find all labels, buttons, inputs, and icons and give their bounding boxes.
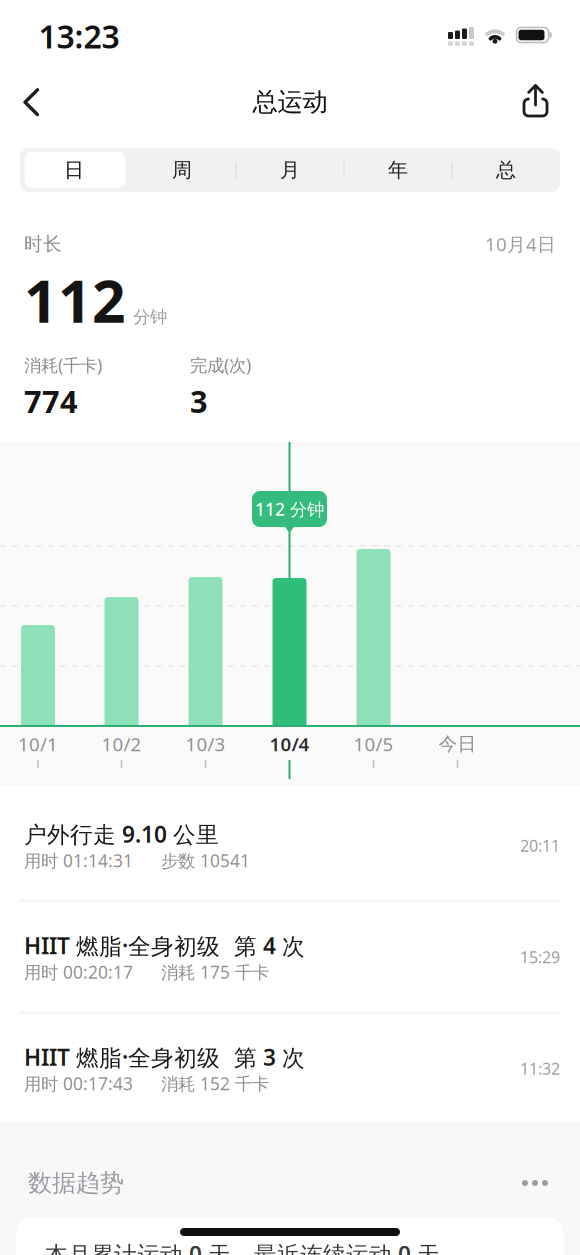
staticText: 11:32	[520, 1058, 560, 1079]
staticText: 完成(次)	[190, 353, 251, 376]
button[interactable]: 日	[20, 148, 128, 192]
staticText: 消耗 152 千卡	[161, 1072, 269, 1095]
staticText: 13:23	[38, 15, 119, 57]
staticText: 用时 00:17:43	[24, 1072, 133, 1095]
staticText: 10/2	[101, 732, 141, 756]
staticText: 用时 01:14:31	[24, 849, 133, 872]
button[interactable]: 总	[452, 148, 560, 192]
staticText: 消耗 175 千卡	[161, 961, 269, 984]
staticText: 10/3	[185, 732, 225, 756]
staticText: 消耗(千卡)	[24, 353, 102, 376]
button[interactable]: HIIT 燃脂·全身初级 第 4 次	[0, 901, 580, 1012]
button[interactable]: 户外行走 9.10 公里	[0, 790, 580, 901]
staticText: 15:29	[520, 946, 560, 968]
staticText: 用时 00:20:17	[24, 961, 133, 984]
staticText: 112 分钟	[255, 497, 324, 520]
staticText: 数据趋势	[28, 1168, 124, 1198]
staticText: 月	[280, 158, 300, 182]
button[interactable]: 本月累计运动 0 天，最近连续运动 0 天	[16, 1217, 564, 1255]
button[interactable]: 周	[128, 148, 236, 192]
staticText: HIIT 燃脂·全身初级 第 3 次	[24, 1042, 305, 1072]
staticText: 总运动	[252, 86, 327, 117]
staticText: 10/5	[353, 732, 393, 756]
button[interactable]: 年	[344, 148, 452, 192]
staticText: 今日	[438, 732, 476, 755]
button[interactable]	[518, 1168, 552, 1198]
button[interactable]: HIIT 燃脂·全身初级 第 3 次	[0, 1013, 580, 1124]
staticText: 本月累计运动 0 天，最近连续运动 0 天	[45, 1239, 440, 1255]
button[interactable]	[513, 79, 557, 123]
staticText: 20:11	[520, 835, 560, 856]
staticText: 10月4日	[485, 232, 556, 256]
staticText: 分钟	[133, 306, 167, 328]
staticText: 时长	[24, 232, 62, 255]
staticText: HIIT 燃脂·全身初级 第 4 次	[24, 930, 305, 961]
staticText: 步数 10541	[161, 849, 250, 872]
staticText: 10/4	[269, 732, 309, 756]
staticText: 774	[24, 381, 78, 421]
staticText: 户外行走 9.10 公里	[24, 819, 219, 849]
button[interactable]: 月	[236, 148, 344, 192]
staticText: 日	[64, 158, 84, 182]
staticText: 3	[190, 381, 208, 421]
staticText: 总	[496, 158, 516, 182]
staticText: 周	[172, 158, 192, 182]
staticText: 112	[24, 261, 126, 339]
button[interactable]	[9, 80, 53, 124]
staticText: 年	[388, 158, 408, 182]
staticText: 10/1	[18, 732, 58, 756]
